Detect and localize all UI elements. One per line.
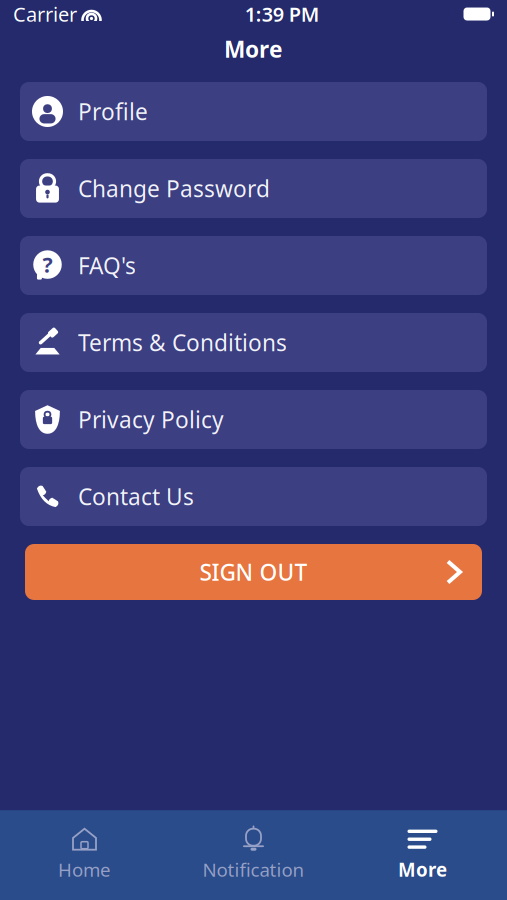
staticText: ? (42, 250, 52, 279)
staticText: Terms & Conditions (78, 327, 287, 357)
staticText: Profile (78, 96, 148, 126)
staticText: Contact Us (78, 481, 194, 511)
staticText: FAQ's (78, 250, 136, 280)
button[interactable]: Contact Us (20, 467, 487, 526)
button[interactable]: More (338, 816, 507, 892)
staticText: 1:39 PM (245, 1, 320, 27)
button[interactable]: ? (20, 236, 487, 295)
staticText: More (398, 857, 447, 882)
button[interactable]: Notification (169, 816, 338, 892)
button[interactable]: Privacy Policy (20, 390, 487, 449)
staticText: Change Password (78, 173, 270, 203)
button[interactable]: Profile (20, 82, 487, 141)
staticText: Privacy Policy (78, 404, 224, 434)
staticText: Home (58, 857, 111, 882)
button[interactable]: Home (0, 816, 169, 892)
button[interactable]: SIGN OUT (25, 544, 482, 600)
staticText: More (224, 34, 283, 64)
button[interactable]: Change Password (20, 159, 487, 218)
staticText: SIGN OUT (199, 557, 307, 587)
staticText: Carrier (13, 1, 77, 27)
button[interactable]: Terms & Conditions (20, 313, 487, 372)
staticText: Notification (202, 857, 304, 882)
